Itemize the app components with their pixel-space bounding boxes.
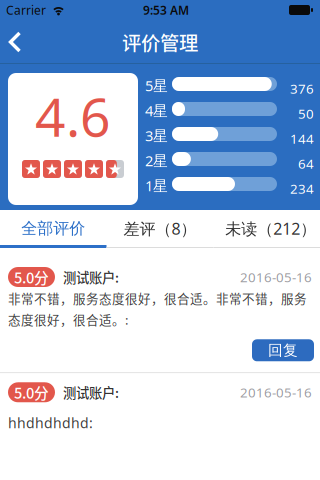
- staticText: 差评（8）: [123, 218, 196, 239]
- staticText: 5.0分: [14, 266, 49, 288]
- staticText: 376: [290, 80, 314, 97]
- staticText: 2016-05-16: [240, 383, 312, 401]
- staticText: 4星: [145, 101, 168, 120]
- staticText: 144: [290, 130, 314, 147]
- staticText: 非常不错，服务态度很好，很合适。非常不错，服务态度很好，很合适。:: [8, 289, 307, 328]
- staticText: 测试账户:: [63, 383, 119, 402]
- staticText: 回复: [268, 341, 298, 359]
- staticText: Carrier: [6, 2, 46, 18]
- staticText: 234: [290, 180, 314, 197]
- staticText: 2016-05-16: [240, 268, 312, 286]
- staticText: hhdhdhdhd:: [8, 413, 93, 432]
- staticText: 9:53 AM: [143, 2, 189, 18]
- button[interactable]: 差评（8）: [106, 210, 213, 248]
- staticText: 4.6: [35, 81, 111, 151]
- staticText: 64: [298, 155, 314, 172]
- staticText: 3星: [145, 126, 168, 145]
- button[interactable]: 回复: [252, 339, 314, 361]
- staticText: 5星: [145, 76, 168, 95]
- staticText: 1星: [145, 176, 168, 195]
- staticText: 全部评价: [21, 219, 85, 238]
- staticText: 未读（212）: [225, 218, 316, 239]
- staticText: 评价管理: [122, 28, 198, 56]
- staticText: 50: [298, 105, 314, 122]
- button[interactable]: 未读（212）: [213, 210, 320, 248]
- button[interactable]: 全部评价: [0, 210, 106, 248]
- staticText: 5.0分: [14, 382, 49, 403]
- staticText: 测试账户:: [63, 267, 119, 287]
- staticText: 2星: [145, 151, 168, 170]
- button[interactable]: Back: [0, 31, 21, 52]
